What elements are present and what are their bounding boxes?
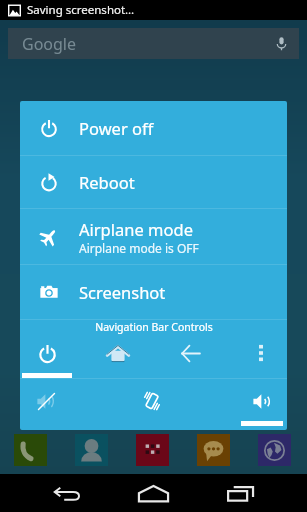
staticText: Screenshot bbox=[79, 281, 166, 303]
staticText: Saving screenshot… bbox=[27, 2, 135, 18]
button[interactable]: Vibrate bbox=[128, 383, 176, 419]
staticText: Navigation Bar Controls bbox=[95, 320, 213, 334]
staticText: Airplane mode bbox=[79, 218, 193, 240]
button[interactable]: Home bbox=[129, 474, 177, 512]
button[interactable]: Apps bbox=[136, 434, 169, 466]
other: Voice search bbox=[274, 36, 289, 51]
button[interactable]: Sound bbox=[238, 383, 286, 419]
button[interactable]: Menu bbox=[237, 335, 285, 371]
button[interactable]: Power bbox=[23, 335, 71, 371]
button[interactable]: Browser bbox=[258, 434, 291, 466]
button[interactable]: Recents bbox=[217, 474, 265, 512]
button[interactable]: Back bbox=[43, 474, 91, 512]
staticText: Power off bbox=[79, 117, 154, 139]
button[interactable]: Airplane mode bbox=[20, 209, 287, 264]
staticText: Reboot bbox=[79, 171, 135, 193]
button[interactable]: Power off bbox=[20, 101, 287, 155]
button[interactable]: Screenshot bbox=[20, 265, 287, 319]
button[interactable]: Silent bbox=[22, 383, 70, 419]
button[interactable]: Contacts bbox=[75, 434, 108, 466]
button[interactable]: Google bbox=[8, 28, 299, 59]
staticText: Google bbox=[22, 33, 77, 55]
staticText: Airplane mode is OFF bbox=[79, 240, 199, 256]
button[interactable]: Reboot bbox=[20, 156, 287, 208]
button[interactable]: Phone bbox=[14, 434, 47, 466]
button[interactable]: Home bbox=[94, 335, 142, 371]
button[interactable]: Messaging bbox=[197, 434, 230, 466]
button[interactable]: Back bbox=[166, 335, 214, 371]
